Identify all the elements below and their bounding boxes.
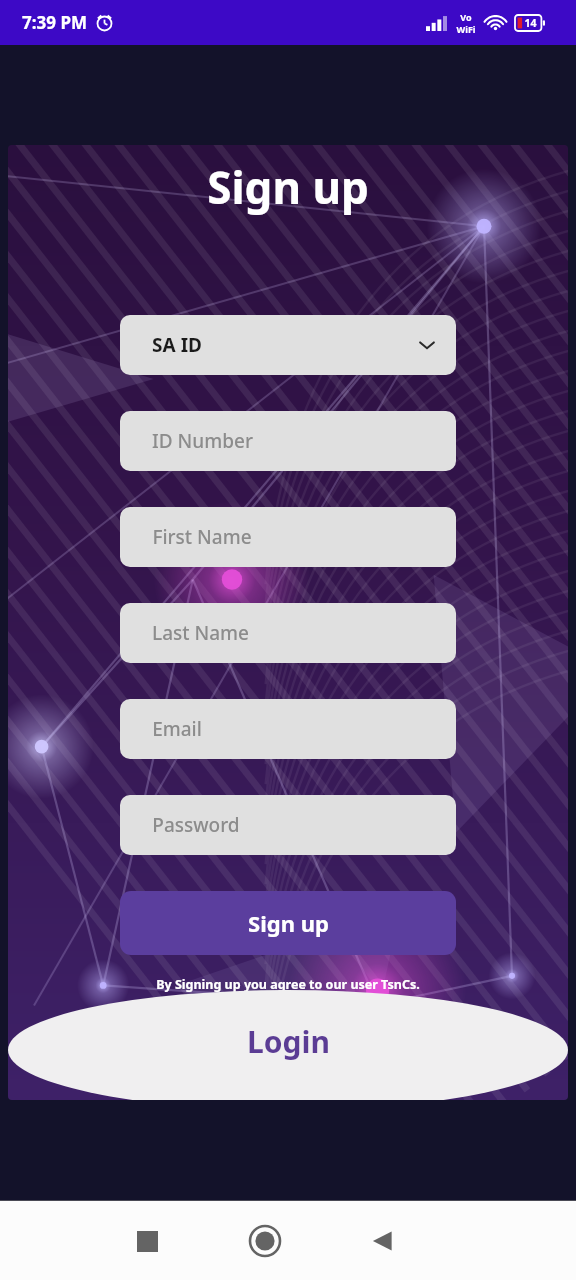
- staticText: ID Number: [152, 428, 253, 454]
- button[interactable]: SA ID: [120, 315, 456, 375]
- button[interactable]: Back: [356, 1214, 410, 1268]
- staticText: Vo: [460, 11, 472, 23]
- staticText: Email: [152, 716, 202, 742]
- button[interactable]: Recent apps: [120, 1214, 174, 1268]
- button[interactable]: ID Number: [120, 411, 456, 471]
- staticText: By Signing up you agree to our user TsnC…: [156, 976, 420, 993]
- staticText: WiFi: [456, 23, 476, 35]
- button[interactable]: First Name: [120, 507, 456, 567]
- button[interactable]: Sign up: [120, 891, 456, 955]
- staticText: Sign up: [207, 157, 369, 217]
- staticText: Login: [247, 1021, 330, 1062]
- button[interactable]: Home: [238, 1214, 292, 1268]
- button[interactable]: Email: [120, 699, 456, 759]
- button[interactable]: Last Name: [120, 603, 456, 663]
- staticText: 7:39 PM: [22, 11, 87, 34]
- button[interactable]: Password: [120, 795, 456, 855]
- staticText: Last Name: [152, 620, 249, 646]
- staticText: First Name: [152, 524, 252, 550]
- staticText: 14: [524, 16, 537, 30]
- staticText: SA ID: [152, 332, 202, 358]
- staticText: Sign up: [248, 908, 329, 938]
- staticText: Password: [152, 812, 240, 838]
- button[interactable]: Login: [8, 990, 568, 1100]
